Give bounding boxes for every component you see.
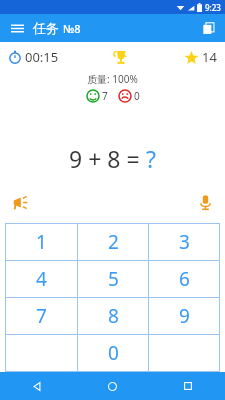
staticText: 1 [36,229,47,255]
staticText: 00:15 [25,48,59,66]
staticText: 任务 [33,19,63,37]
button[interactable]: Menu [6,17,28,39]
staticText: ? [146,143,156,174]
button[interactable]: 8 [78,298,148,334]
staticText: 14 [202,48,217,66]
staticText: 2 [108,229,119,255]
staticText: 7 [36,303,47,329]
button[interactable]: 6 [149,261,219,297]
staticText: 9 [179,303,190,329]
button[interactable]: 3 [149,224,219,260]
staticText: 4 [36,266,47,292]
button[interactable]: Speak question [8,190,32,214]
button[interactable]: Voice input [193,190,217,214]
staticText: 0 [134,89,140,103]
staticText: 7 [102,89,108,103]
button[interactable]: 2 [78,224,148,260]
staticText: №8 [63,21,81,36]
button[interactable]: Home [75,372,150,400]
button[interactable]: 0 [78,335,148,371]
staticText: 8 [108,303,119,329]
staticText: 0 [108,340,119,366]
staticText: 3 [179,229,190,255]
staticText: 质量: 100% [87,72,138,86]
button[interactable]: 1 [6,224,77,260]
staticText: 9:23 [205,2,221,13]
button[interactable]: 4 [6,261,77,297]
button[interactable]: 7 [6,298,77,334]
button[interactable]: Trophy [110,46,132,68]
button[interactable]: Back [0,372,75,400]
button[interactable]: 14 [184,48,217,66]
staticText: 9 + 8 = [69,143,146,174]
button[interactable]: 9 [149,298,219,334]
button[interactable]: 00:15 [8,48,59,66]
staticText: 6 [179,266,190,292]
button[interactable]: Recent apps [150,372,225,400]
button[interactable]: 5 [78,261,148,297]
button[interactable]: Reference book [197,17,219,39]
staticText: 5 [108,266,119,292]
